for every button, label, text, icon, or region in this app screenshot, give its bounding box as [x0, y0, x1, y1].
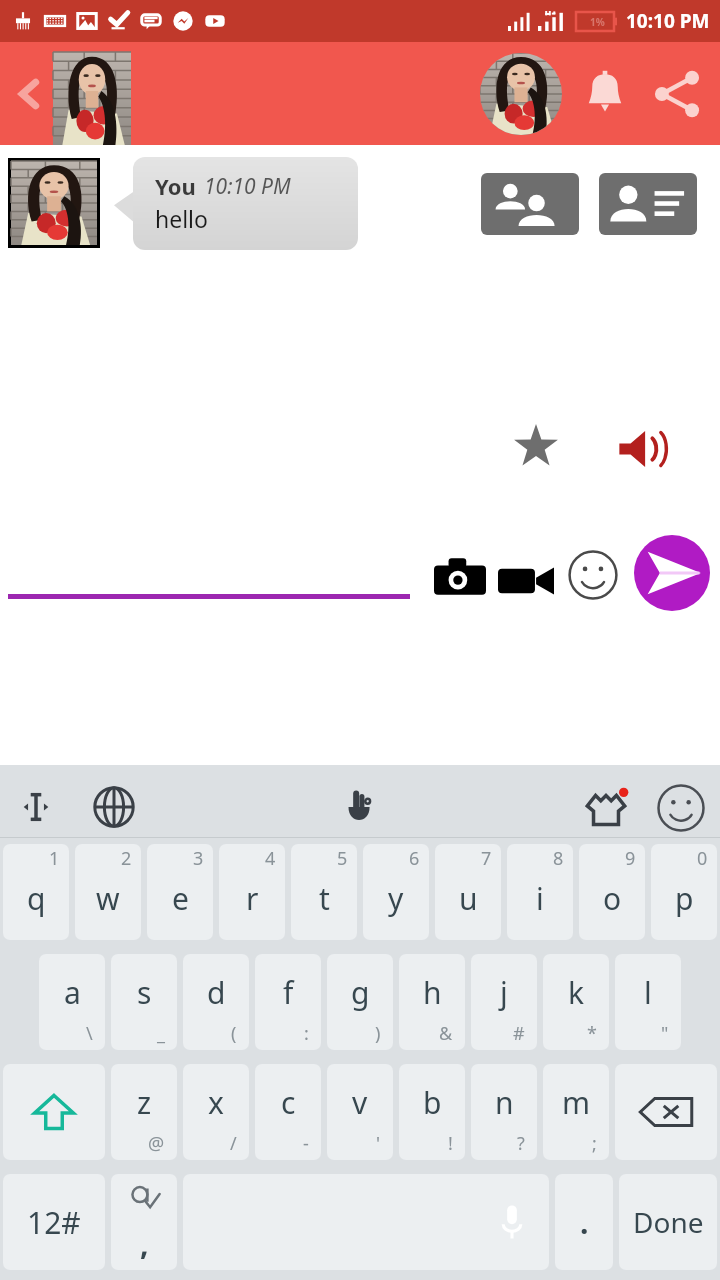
- button[interactable]: Group members: [481, 173, 579, 235]
- staticText: @: [148, 1131, 165, 1156]
- button[interactable]: 4: [219, 844, 285, 940]
- staticText: 6: [409, 846, 420, 871]
- button[interactable]: Handwriting: [336, 783, 384, 831]
- staticText: _: [157, 1021, 165, 1046]
- button[interactable]: 7: [435, 844, 501, 940]
- staticText: \: [86, 1021, 93, 1046]
- button[interactable]: 12#: [3, 1174, 105, 1270]
- staticText: &: [439, 1021, 453, 1046]
- staticText: y: [388, 878, 404, 919]
- button[interactable]: Sound: [616, 421, 672, 477]
- staticText: g: [351, 972, 370, 1013]
- staticText: m: [562, 1082, 591, 1123]
- staticText: 1%: [590, 15, 605, 29]
- button[interactable]: 1: [3, 844, 69, 940]
- button[interactable]: h: [399, 954, 465, 1050]
- staticText: f: [283, 972, 294, 1013]
- staticText: o: [603, 878, 622, 919]
- button[interactable]: z: [111, 1064, 177, 1160]
- button[interactable]: Send: [634, 535, 710, 611]
- button[interactable]: c: [255, 1064, 321, 1160]
- button[interactable]: Video: [498, 553, 554, 609]
- staticText: c: [281, 1082, 296, 1123]
- staticText: hello: [155, 203, 208, 234]
- staticText: s: [137, 972, 152, 1013]
- button[interactable]: You: [133, 157, 358, 250]
- button[interactable]: s: [111, 954, 177, 1050]
- staticText: ,: [140, 1223, 149, 1264]
- button[interactable]: Backspace: [615, 1064, 717, 1160]
- button[interactable]: a: [39, 954, 105, 1050]
- button[interactable]: Favorite: [512, 421, 560, 469]
- staticText: r: [246, 878, 259, 919]
- button[interactable]: Done: [619, 1174, 717, 1270]
- staticText: n: [495, 1082, 514, 1123]
- staticText: z: [137, 1082, 152, 1123]
- staticText: 12#: [27, 1202, 81, 1243]
- button[interactable]: Notifications: [576, 65, 634, 123]
- button[interactable]: l: [615, 954, 681, 1050]
- staticText: 1: [49, 846, 60, 871]
- staticText: v: [352, 1082, 368, 1123]
- button[interactable]: Language: [90, 783, 138, 831]
- staticText: 2: [121, 846, 132, 871]
- staticText: 4: [265, 846, 276, 871]
- button[interactable]: Emoji: [567, 549, 619, 601]
- staticText: d: [207, 972, 226, 1013]
- button[interactable]: 3: [147, 844, 213, 940]
- button[interactable]: n: [471, 1064, 537, 1160]
- staticText: k: [568, 972, 585, 1013]
- staticText: 9: [625, 846, 636, 871]
- staticText: h: [423, 972, 442, 1013]
- button[interactable]: Share: [648, 65, 706, 123]
- button[interactable]: 0: [651, 844, 717, 940]
- staticText: b: [423, 1082, 442, 1123]
- button[interactable]: Themes: [580, 783, 632, 835]
- staticText: :: [304, 1021, 309, 1046]
- staticText: Done: [633, 1203, 704, 1241]
- button[interactable]: Camera: [434, 551, 486, 603]
- staticText: ': [376, 1131, 381, 1156]
- staticText: 3: [193, 846, 204, 871]
- button[interactable]: 9: [579, 844, 645, 940]
- button[interactable]: b: [399, 1064, 465, 1160]
- button[interactable]: v: [327, 1064, 393, 1160]
- staticText: ?: [517, 1131, 525, 1156]
- staticText: ): [375, 1021, 381, 1046]
- staticText: u: [459, 878, 478, 919]
- button[interactable]: Cursor control: [14, 785, 58, 829]
- staticText: 0: [697, 846, 708, 871]
- button[interactable]: Emoji: [656, 783, 706, 833]
- button[interactable]: f: [255, 954, 321, 1050]
- button[interactable]: d: [183, 954, 249, 1050]
- staticText: 10:10 PM: [626, 8, 710, 34]
- staticText: /: [230, 1131, 237, 1156]
- button[interactable]: 8: [507, 844, 573, 940]
- staticText: w: [96, 878, 120, 919]
- button[interactable]: k: [543, 954, 609, 1050]
- button[interactable]: 5: [291, 844, 357, 940]
- button[interactable]: Contact details: [599, 173, 697, 235]
- staticText: j: [500, 972, 508, 1013]
- staticText: l: [644, 972, 652, 1013]
- staticText: .: [580, 1202, 589, 1243]
- staticText: 7: [481, 846, 492, 871]
- button[interactable]: Shift: [3, 1064, 105, 1160]
- button[interactable]: x: [183, 1064, 249, 1160]
- button[interactable]: 2: [75, 844, 141, 940]
- button[interactable]: .: [555, 1174, 613, 1270]
- staticText: t: [319, 878, 330, 919]
- button[interactable]: Profile: [480, 53, 562, 135]
- staticText: x: [208, 1082, 224, 1123]
- button[interactable]: j: [471, 954, 537, 1050]
- button[interactable]: 6: [363, 844, 429, 940]
- staticText: p: [675, 878, 694, 919]
- button[interactable]: g: [327, 954, 393, 1050]
- staticText: (: [231, 1021, 237, 1046]
- button[interactable]: Back: [8, 73, 50, 115]
- staticText: q: [27, 878, 46, 919]
- staticText: 8: [553, 846, 564, 871]
- button[interactable]: m: [543, 1064, 609, 1160]
- button[interactable]: Autocorrect and comma: [111, 1174, 177, 1270]
